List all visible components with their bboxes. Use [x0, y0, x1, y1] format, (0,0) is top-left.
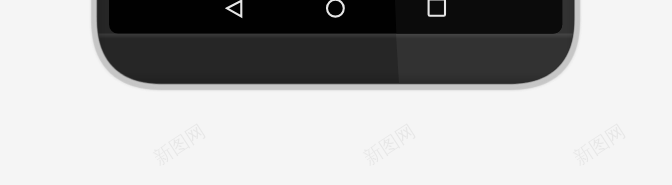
staticText: 新图网 — [569, 119, 630, 171]
staticText: 新图网 — [359, 119, 420, 171]
button[interactable]: Recent apps — [419, 0, 455, 22]
staticText: 新图网 — [149, 119, 210, 171]
button[interactable]: Home — [318, 0, 354, 22]
button[interactable]: Back — [218, 0, 254, 22]
